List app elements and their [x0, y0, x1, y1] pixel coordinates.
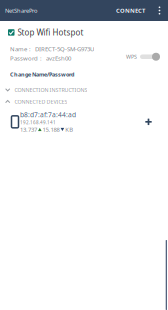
staticText: Password : avzEsh00 — [10, 54, 71, 62]
button[interactable]: CONNECTION INSTRUCTIONS — [0, 78, 168, 93]
button[interactable]: Stop Wifi Hotspot — [0, 21, 168, 38]
button[interactable]: CONNECT — [110, 0, 151, 21]
button[interactable]: Add device — [145, 118, 168, 125]
staticText: KB — [65, 125, 73, 133]
staticText: b8:d7:af:7a:44:ad — [20, 110, 76, 119]
staticText: 13.737 — [20, 125, 37, 133]
staticText: NetSharePro — [5, 7, 37, 14]
button[interactable]: More options — [151, 0, 168, 21]
button[interactable]: Change Name/Password — [0, 62, 168, 78]
button[interactable]: WPS — [126, 52, 168, 62]
staticText: CONNECTED DEVICES — [14, 98, 67, 105]
staticText: WPS — [126, 53, 137, 60]
staticText: 15.188 — [43, 125, 60, 133]
staticText: CONNECT — [116, 6, 145, 14]
staticText: Change Name/Password — [10, 71, 74, 78]
staticText: Name : DIRECT-5Q-SM-G973U — [10, 45, 94, 53]
button[interactable]: CONNECTED DEVICES — [0, 93, 168, 105]
staticText: CONNECTION INSTRUCTIONS — [14, 86, 87, 93]
staticText: 192.168.49.141 — [20, 119, 56, 125]
staticText: Stop Wifi Hotspot — [17, 27, 83, 38]
